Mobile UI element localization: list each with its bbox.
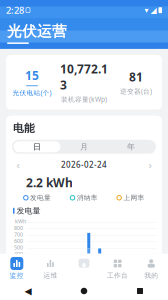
staticText: 2.2 kWh xyxy=(26,175,73,191)
button[interactable]: 81 xyxy=(110,69,162,96)
staticText: 消纳率 xyxy=(77,194,98,202)
staticText: 81 xyxy=(129,69,143,85)
button[interactable]: 我的 xyxy=(134,257,168,280)
staticText: 2026-02-24 xyxy=(61,159,107,170)
staticText: 发电量 xyxy=(30,194,51,202)
staticText: 800 xyxy=(14,224,23,232)
staticText: 0 xyxy=(20,276,23,284)
staticText: 光伏运营 xyxy=(7,22,67,40)
button[interactable]: 工作台 xyxy=(101,257,134,280)
button[interactable]: 运维 xyxy=(34,257,67,280)
button[interactable]: Home xyxy=(67,257,101,280)
staticText: ◢ xyxy=(150,6,156,15)
button[interactable]: 年 xyxy=(107,141,154,152)
staticText: 100 xyxy=(14,270,23,277)
button[interactable]: 日 xyxy=(13,141,60,152)
button[interactable]: Next day xyxy=(144,159,156,171)
staticText: kWh xyxy=(15,218,26,225)
staticText: 10,772.13 xyxy=(60,61,108,93)
staticText: 运维 xyxy=(43,271,57,280)
staticText: › xyxy=(148,158,151,172)
button[interactable]: 监控 xyxy=(0,257,34,280)
staticText: 上网率 xyxy=(123,194,144,202)
staticText: 电能 xyxy=(13,122,35,135)
button[interactable]: 10,772.13 xyxy=(58,61,110,104)
staticText: 装机容量(kWp) xyxy=(61,95,107,104)
staticText: 300 xyxy=(14,257,23,264)
button[interactable]: Recents xyxy=(112,288,168,294)
staticText: 700 xyxy=(14,231,23,238)
button[interactable]: 上网率 xyxy=(107,194,154,202)
staticText: 日 xyxy=(33,142,41,152)
staticText: 年 xyxy=(127,142,135,152)
button[interactable]: Back xyxy=(0,286,56,296)
button[interactable]: 月 xyxy=(60,141,107,152)
staticText: 工作台 xyxy=(107,271,128,280)
staticText: 400 xyxy=(14,250,23,258)
button[interactable]: 15 xyxy=(6,67,58,97)
button[interactable]: 消纳率 xyxy=(61,194,107,202)
staticText: 2:28 xyxy=(6,4,24,16)
staticText: ▾ xyxy=(144,6,148,15)
button[interactable]: Previous day xyxy=(12,159,24,171)
staticText: 发电量 xyxy=(16,206,40,216)
staticText: 监控 xyxy=(10,271,24,280)
staticText: 月 xyxy=(80,142,88,152)
staticText: 600 xyxy=(14,237,23,245)
staticText: 15 xyxy=(25,67,39,83)
staticText: 500 xyxy=(14,244,23,251)
staticText: 200 xyxy=(14,263,23,271)
staticText: 23:00 xyxy=(141,284,154,291)
staticText: 光伏电站(个) xyxy=(12,88,51,97)
staticText: ◀ xyxy=(24,286,31,296)
staticText: 00:00 xyxy=(29,284,42,291)
button[interactable]: 发电量 xyxy=(14,194,61,202)
staticText: 12:00 xyxy=(85,284,98,291)
staticText: 我的 xyxy=(144,271,158,280)
button[interactable]: Home xyxy=(56,288,112,294)
staticText: 逆变器(台) xyxy=(120,87,152,96)
staticText: ‹ xyxy=(16,158,19,172)
